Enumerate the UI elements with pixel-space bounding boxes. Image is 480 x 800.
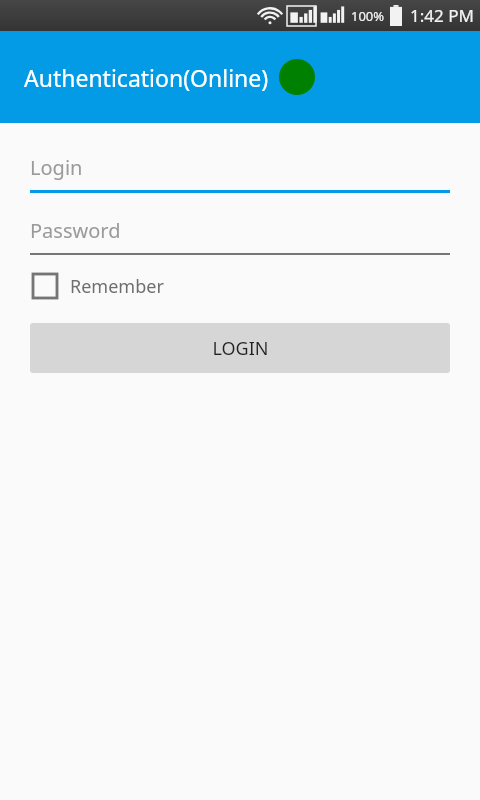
- button[interactable]: Password: [30, 214, 450, 255]
- button[interactable]: Login: [30, 151, 450, 193]
- staticText: Authentication(Online): [24, 62, 269, 93]
- staticText: 1:42 PM: [410, 4, 474, 27]
- staticText: Password: [30, 217, 121, 244]
- staticText: 100%: [351, 7, 385, 25]
- button[interactable]: Online status: [279, 59, 315, 95]
- staticText: Remember: [70, 274, 164, 299]
- button[interactable]: Remember: [30, 267, 164, 305]
- staticText: LOGIN: [212, 336, 269, 361]
- staticText: Login: [30, 154, 83, 181]
- button[interactable]: LOGIN: [30, 323, 450, 373]
